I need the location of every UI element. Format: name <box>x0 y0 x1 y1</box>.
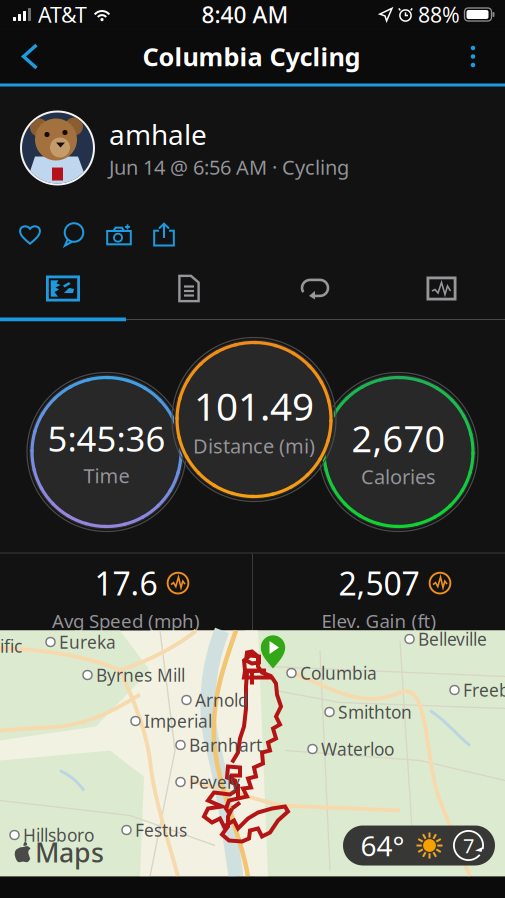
button[interactable]: Add photo <box>96 214 142 254</box>
button[interactable]: Back <box>4 29 56 83</box>
staticText: 88% <box>418 0 460 29</box>
staticText: Columbia <box>300 661 377 684</box>
button[interactable]: Charts <box>378 259 505 317</box>
staticText: 2,670 <box>351 414 445 462</box>
staticText: Time <box>83 462 129 489</box>
staticText: amhale <box>109 116 207 153</box>
button[interactable]: Like <box>8 214 52 254</box>
staticText: Barnhart <box>189 733 262 756</box>
staticText: Avg Speed (mph) <box>52 608 200 633</box>
button[interactable]: Map <box>0 259 126 317</box>
staticText: Distance (mi) <box>193 432 315 459</box>
staticText: AT&T <box>38 0 87 29</box>
staticText: Pevely <box>189 770 240 793</box>
staticText: 8:40 AM <box>201 0 288 29</box>
staticText: 17.6 <box>94 562 157 604</box>
staticText: Imperial <box>144 709 212 732</box>
staticText: 2,507 <box>338 562 419 604</box>
staticText: Elev. Gain (ft) <box>321 608 436 633</box>
staticText: Eureka <box>59 630 116 653</box>
button[interactable]: Laps <box>252 259 378 317</box>
button[interactable]: Comment <box>52 214 96 254</box>
staticText: 64° <box>360 827 404 864</box>
staticText: Calories <box>361 463 436 490</box>
button[interactable]: Details <box>126 259 252 317</box>
staticText: Waterloo <box>321 737 394 760</box>
staticText: cific <box>0 634 22 657</box>
staticText: 7 <box>463 832 474 859</box>
staticText: Hillsboro <box>23 823 94 846</box>
staticText: Smithton <box>338 700 412 723</box>
staticText: Freebur <box>463 678 505 701</box>
staticText: Maps <box>35 834 104 870</box>
staticText: 5:45:36 <box>47 415 165 461</box>
staticText: Arnold <box>195 688 249 711</box>
button[interactable]: More options <box>447 29 499 83</box>
staticText: Jun 14 @ 6:56 AM · Cycling <box>109 154 349 180</box>
staticText: Columbia Cycling <box>142 40 360 73</box>
staticText: Byrnes Mill <box>96 663 185 686</box>
button[interactable]: Share <box>142 214 186 254</box>
staticText: Festus <box>135 818 187 841</box>
staticText: Belleville <box>418 627 487 650</box>
staticText: 101.49 <box>194 380 314 431</box>
